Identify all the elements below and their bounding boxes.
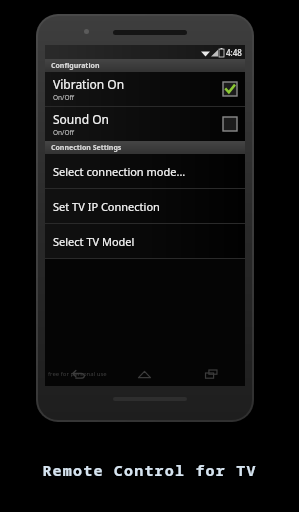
staticText: Connection Settings	[51, 143, 122, 153]
button[interactable]: Vibration On	[45, 72, 245, 106]
staticText: Select TV Model	[53, 234, 135, 249]
staticText: Vibration On	[53, 76, 125, 92]
staticText: free for personal use	[48, 370, 107, 378]
staticText: 4:48	[226, 47, 242, 58]
button[interactable]: Sound On	[45, 107, 245, 141]
staticText: Sound On	[53, 111, 109, 127]
button[interactable]: Back	[45, 362, 111, 386]
button[interactable]: Set TV IP Connection	[45, 189, 245, 223]
staticText: On/Off	[53, 93, 75, 102]
button[interactable]: Select TV Model	[45, 224, 245, 258]
staticText: Set TV IP Connection	[53, 199, 160, 214]
button[interactable]: Recents	[178, 362, 245, 386]
button[interactable]: Select connection mode...	[45, 154, 245, 188]
staticText: Remote Control for TV	[0, 460, 299, 480]
staticText: On/Off	[53, 128, 75, 137]
staticText: Configuration	[51, 61, 100, 71]
button[interactable]: Home	[111, 362, 178, 386]
staticText: Select connection mode...	[53, 164, 186, 179]
